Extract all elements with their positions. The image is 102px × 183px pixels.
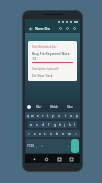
- staticText: u: [58, 114, 60, 118]
- button[interactable]: y: [50, 112, 56, 119]
- button[interactable]: r: [40, 112, 45, 119]
- button[interactable]: Google search: [27, 105, 31, 109]
- button[interactable]: u: [56, 112, 62, 119]
- staticText: z: [34, 132, 36, 136]
- button[interactable]: ?123: [26, 139, 34, 153]
- staticText: b: [56, 132, 58, 136]
- staticText: w: [31, 114, 34, 118]
- staticText: a: [30, 123, 32, 127]
- button[interactable]: b: [54, 130, 60, 137]
- staticText: Do Your Task: [32, 73, 53, 77]
- button[interactable]: ,: [34, 139, 39, 153]
- button[interactable]: Back: [30, 155, 38, 163]
- button[interactable]: p: [74, 112, 80, 119]
- button[interactable]: Waldo: [46, 105, 62, 109]
- staticText: s: [36, 123, 38, 127]
- staticText: v: [50, 132, 52, 136]
- staticText: f: [48, 123, 50, 127]
- button[interactable]: Shift: [25, 130, 32, 137]
- button[interactable]: Blur: [31, 105, 46, 109]
- staticText: p: [76, 114, 78, 118]
- button[interactable]: z: [32, 130, 37, 137]
- staticText: k: [69, 123, 71, 127]
- staticText: Description (optional): [32, 67, 59, 71]
- button[interactable]: c: [42, 130, 48, 137]
- button[interactable]: Shift: [72, 130, 80, 137]
- staticText: Blue: [67, 105, 73, 109]
- button[interactable]: Back: [27, 25, 34, 32]
- staticText: m: [68, 132, 71, 136]
- button[interactable]: f: [46, 121, 52, 128]
- staticText: g: [54, 123, 56, 127]
- button[interactable]: a: [28, 121, 34, 128]
- button[interactable]: Hide keyboard: [67, 155, 75, 163]
- staticText: y: [52, 114, 54, 118]
- button[interactable]: .: [66, 139, 71, 153]
- button[interactable]: t: [45, 112, 50, 119]
- staticText: r: [42, 114, 44, 118]
- staticText: h: [59, 123, 61, 127]
- button[interactable]: q: [25, 112, 30, 119]
- staticText: Bug Fix Keyword Note 12: [32, 51, 73, 61]
- staticText: d: [42, 123, 44, 127]
- button[interactable]: Home: [42, 155, 50, 163]
- staticText: Title (Scheduled Do): [32, 45, 57, 49]
- staticText: x: [39, 132, 41, 136]
- button[interactable]: Delete: [64, 25, 71, 32]
- staticText: t: [47, 114, 49, 118]
- button[interactable]: e: [35, 112, 40, 119]
- staticText: i: [65, 114, 66, 118]
- button[interactable]: i: [62, 112, 68, 119]
- button[interactable]: More options: [71, 25, 78, 32]
- button[interactable]: Enter: [71, 139, 79, 153]
- button[interactable]: o: [68, 112, 74, 119]
- button[interactable]: w: [30, 112, 35, 119]
- staticText: l: [74, 123, 75, 127]
- staticText: .: [68, 144, 69, 148]
- button[interactable]: l: [72, 121, 77, 128]
- staticText: n: [62, 132, 64, 136]
- button[interactable]: s: [34, 121, 40, 128]
- staticText: j: [64, 123, 65, 127]
- button[interactable]: g: [52, 121, 57, 128]
- button[interactable]: x: [37, 130, 42, 137]
- staticText: c: [44, 132, 46, 136]
- staticText: o: [70, 114, 72, 118]
- button[interactable]: Blue: [62, 105, 78, 109]
- staticText: Blur: [36, 105, 42, 109]
- staticText: New Do: [35, 26, 50, 31]
- staticText: ?123: [27, 144, 34, 148]
- button[interactable]: k: [67, 121, 72, 128]
- button[interactable]: m: [66, 130, 72, 137]
- staticText: ,: [36, 144, 37, 148]
- button[interactable]: n: [60, 130, 66, 137]
- staticText: q: [27, 114, 29, 118]
- button[interactable]: Shift: [39, 139, 44, 153]
- button[interactable]: v: [48, 130, 54, 137]
- button[interactable]: j: [62, 121, 67, 128]
- button[interactable]: Share: [57, 25, 64, 32]
- button[interactable]: Recents: [55, 155, 63, 163]
- staticText: Waldo: [50, 105, 59, 109]
- button[interactable]: h: [57, 121, 62, 128]
- staticText: e: [37, 114, 39, 118]
- button[interactable]: d: [40, 121, 46, 128]
